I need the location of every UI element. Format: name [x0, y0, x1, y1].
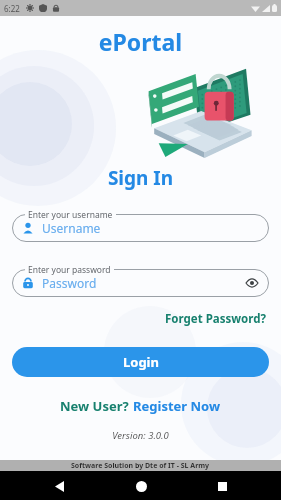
button[interactable]: New User? — [0, 397, 281, 415]
button[interactable]: Forget Password? — [163, 309, 268, 329]
staticText: Register Now — [133, 397, 221, 415]
staticText: Username — [42, 220, 101, 236]
button[interactable]: Back — [48, 475, 70, 497]
staticText: Version: 3.0.0 — [0, 429, 281, 442]
button[interactable]: Recent apps — [211, 475, 233, 497]
staticText: Software Solution by Dte of IT - SL Army — [71, 461, 210, 471]
button[interactable]: Login — [12, 347, 269, 377]
staticText: Enter your password — [28, 264, 111, 276]
button[interactable]: Password — [12, 269, 269, 297]
staticText: 6:22 — [4, 3, 20, 14]
staticText: Enter your username — [28, 209, 113, 221]
button[interactable]: Username — [12, 214, 269, 242]
staticText: Sign In — [0, 165, 281, 191]
staticText: Password — [42, 275, 97, 291]
staticText: ePortal — [0, 26, 281, 57]
staticText: New User? — [60, 397, 133, 415]
staticText: Forget Password? — [165, 311, 266, 327]
staticText: Login — [123, 353, 159, 371]
button[interactable]: Home — [130, 475, 152, 497]
button[interactable]: Show password — [245, 276, 259, 290]
